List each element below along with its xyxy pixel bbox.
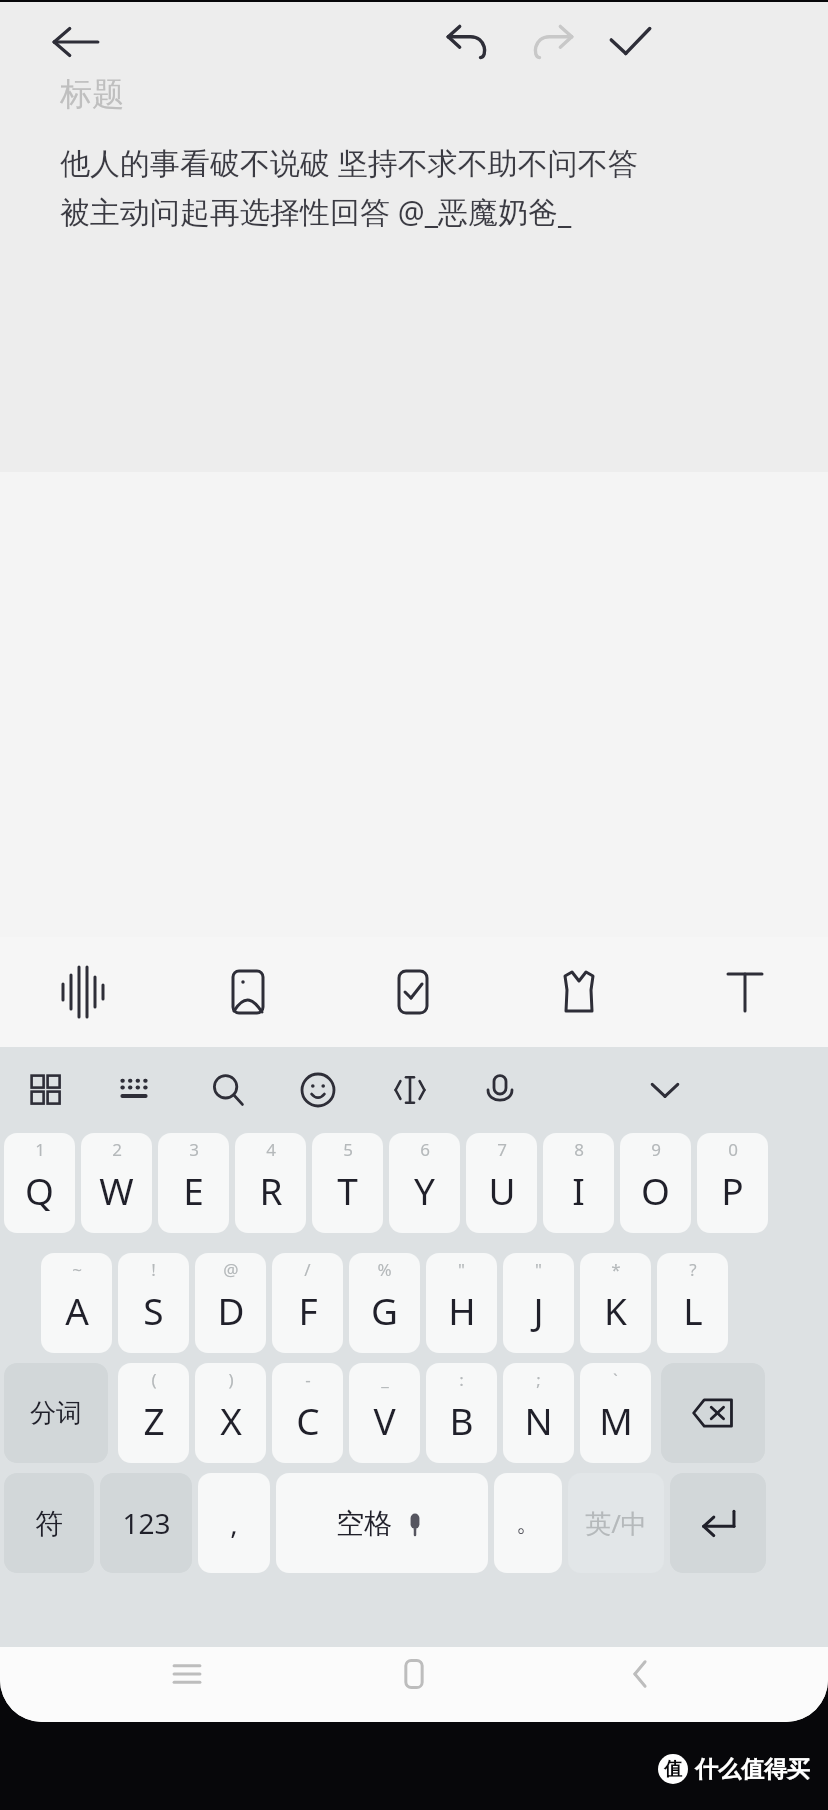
button[interactable]: 。 [494, 1473, 562, 1573]
button[interactable]: 123 [100, 1473, 192, 1573]
button[interactable]: Recent apps [147, 1647, 227, 1700]
button[interactable]: 1 [4, 1133, 75, 1233]
staticText: ? [689, 1258, 697, 1281]
staticText: _ [381, 1368, 389, 1391]
button[interactable]: Style [496, 937, 662, 1047]
button[interactable]: 2 [81, 1133, 152, 1233]
staticText: , [230, 1504, 238, 1542]
staticText: : [459, 1368, 464, 1391]
button[interactable]: Move cursor [381, 1061, 439, 1119]
button[interactable]: Panels [17, 1061, 75, 1119]
button[interactable]: Undo [434, 8, 502, 76]
button[interactable]: 8 [543, 1133, 614, 1233]
button[interactable]: ! [118, 1253, 189, 1353]
button[interactable]: _ [349, 1363, 420, 1463]
staticText: S [143, 1285, 164, 1335]
button[interactable]: * [580, 1253, 651, 1353]
staticText: E [183, 1165, 204, 1215]
staticText: ( [151, 1368, 157, 1391]
staticText: 他人的事看破不说破 坚持不求不助不问不答 [60, 142, 638, 183]
button[interactable]: 分词 [4, 1363, 108, 1463]
button[interactable]: ? [657, 1253, 728, 1353]
button[interactable]: ) [195, 1363, 266, 1463]
button[interactable]: 空格 [276, 1473, 488, 1573]
staticText: N [524, 1395, 553, 1445]
staticText: 分词 [30, 1397, 82, 1430]
staticText: 标题 [60, 74, 124, 114]
staticText: 123 [122, 1504, 171, 1542]
staticText: 符 [35, 1506, 63, 1541]
button[interactable]: Search [199, 1061, 257, 1119]
button[interactable]: 6 [389, 1133, 460, 1233]
staticText: ! [151, 1258, 156, 1281]
staticText: - [305, 1368, 311, 1391]
button[interactable]: Checklist [330, 937, 496, 1047]
staticText: " [535, 1258, 542, 1281]
staticText: V [373, 1395, 396, 1445]
button[interactable]: Redo [518, 8, 586, 76]
button[interactable]: Insert image [165, 937, 330, 1047]
button[interactable]: 9 [620, 1133, 691, 1233]
button[interactable]: Text format [662, 937, 828, 1047]
staticText: ` [613, 1368, 618, 1391]
button[interactable]: Emoji [289, 1061, 347, 1119]
button[interactable]: : [426, 1363, 497, 1463]
staticText: ; [536, 1368, 541, 1391]
button[interactable]: / [272, 1253, 343, 1353]
staticText: A [65, 1285, 89, 1335]
staticText: 。 [516, 1508, 540, 1538]
button[interactable]: Hide keyboard [636, 1061, 694, 1119]
button[interactable]: Keyboard layout [105, 1061, 163, 1119]
button[interactable]: Backspace [661, 1363, 765, 1463]
staticText: L [683, 1285, 703, 1335]
button[interactable]: - [272, 1363, 343, 1463]
staticText: F [298, 1285, 318, 1335]
button[interactable]: @ [195, 1253, 266, 1353]
staticText: Q [25, 1165, 54, 1215]
staticText: 7 [497, 1138, 507, 1161]
button[interactable]: , [198, 1473, 270, 1573]
staticText: 3 [189, 1138, 199, 1161]
button[interactable]: Voice note [0, 937, 165, 1047]
button[interactable]: 0 [697, 1133, 768, 1233]
staticText: 6 [420, 1138, 430, 1161]
button[interactable]: Home [374, 1647, 454, 1700]
staticText: 值 [664, 1758, 682, 1781]
button[interactable]: % [349, 1253, 420, 1353]
button[interactable]: 3 [158, 1133, 229, 1233]
button[interactable]: ` [580, 1363, 651, 1463]
staticText: T [337, 1165, 358, 1215]
staticText: J [533, 1285, 544, 1335]
button[interactable]: Enter [670, 1473, 766, 1573]
staticText: I [572, 1165, 585, 1215]
button[interactable]: 英/中 [568, 1473, 664, 1573]
staticText: " [458, 1258, 465, 1281]
button[interactable]: " [426, 1253, 497, 1353]
button[interactable]: ; [503, 1363, 574, 1463]
button[interactable]: 4 [235, 1133, 306, 1233]
staticText: 1 [35, 1138, 45, 1161]
staticText: U [488, 1165, 516, 1215]
staticText: % [377, 1258, 392, 1281]
button[interactable]: ~ [41, 1253, 112, 1353]
button[interactable]: Back [601, 1647, 681, 1700]
staticText: 空格 [336, 1506, 392, 1541]
button[interactable]: Voice input [471, 1061, 529, 1119]
staticText: 被主动问起再选择性回答 @_恶魔奶爸_ [60, 191, 572, 232]
staticText: @ [223, 1258, 239, 1281]
staticText: W [99, 1165, 134, 1215]
button[interactable]: 5 [312, 1133, 383, 1233]
button[interactable]: Save [596, 8, 664, 76]
staticText: 0 [728, 1138, 738, 1161]
button[interactable]: Back [42, 8, 110, 76]
staticText: P [721, 1165, 744, 1215]
staticText: G [371, 1285, 398, 1335]
staticText: X [220, 1395, 242, 1445]
staticText: Z [143, 1395, 165, 1445]
staticText: / [304, 1258, 311, 1281]
button[interactable]: 符 [4, 1473, 94, 1573]
staticText: D [217, 1285, 245, 1335]
button[interactable]: 7 [466, 1133, 537, 1233]
button[interactable]: ( [118, 1363, 189, 1463]
button[interactable]: " [503, 1253, 574, 1353]
